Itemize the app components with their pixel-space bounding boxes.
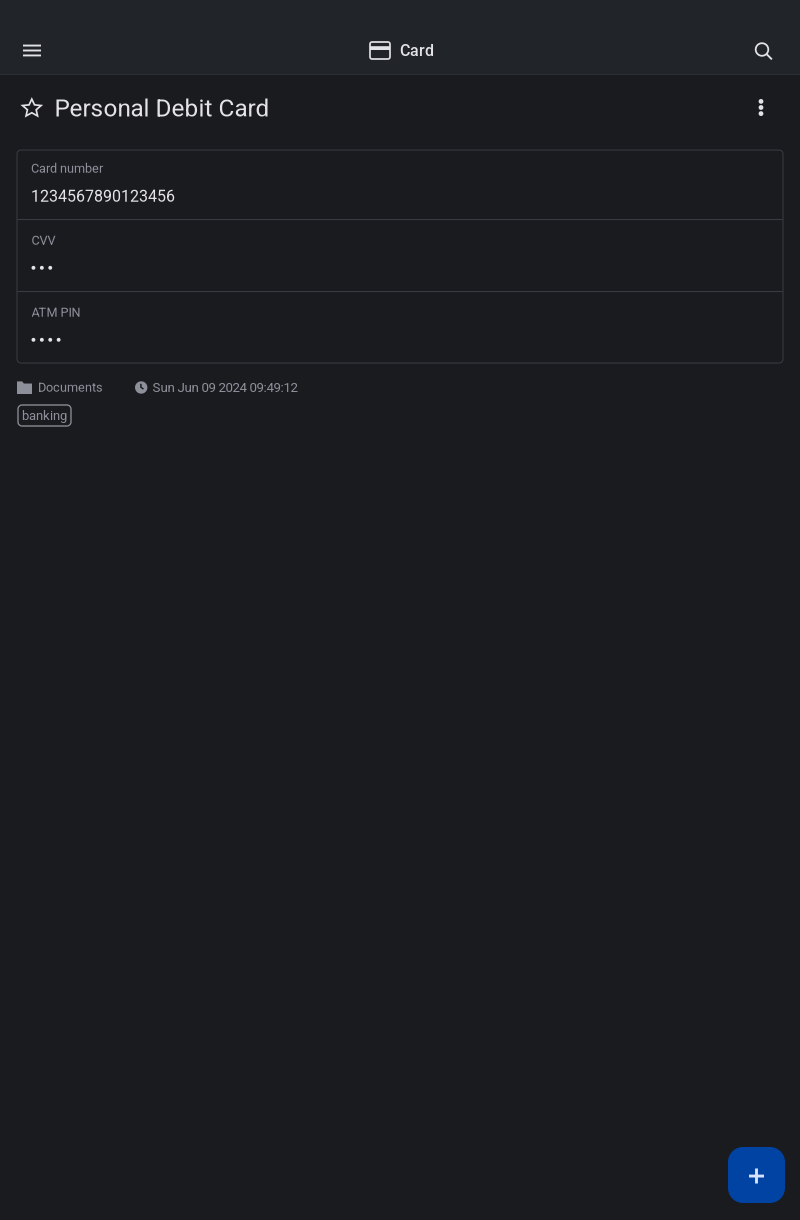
button[interactable]: Menu xyxy=(9,24,55,74)
staticText: Personal Debit Card xyxy=(55,94,270,122)
button[interactable]: ATM PIN xyxy=(17,292,783,363)
button[interactable]: Add xyxy=(728,1147,785,1203)
button[interactable]: Favorite xyxy=(16,75,46,148)
staticText: Sun Jun 09 2024 09:49:12 xyxy=(152,380,297,395)
staticText: banking xyxy=(22,408,67,423)
button[interactable]: Search xyxy=(739,24,785,74)
staticText: Documents xyxy=(38,380,103,395)
staticText: ATM PIN xyxy=(31,305,80,320)
button[interactable]: CVV xyxy=(17,220,783,291)
staticText: CVV xyxy=(31,233,55,248)
button[interactable]: banking xyxy=(18,405,71,426)
staticText: 1234567890123456 xyxy=(31,187,175,206)
button[interactable]: Card number xyxy=(17,150,783,219)
button[interactable]: More options xyxy=(752,75,770,149)
staticText: Card xyxy=(400,41,434,60)
staticText: Card number xyxy=(31,161,103,176)
